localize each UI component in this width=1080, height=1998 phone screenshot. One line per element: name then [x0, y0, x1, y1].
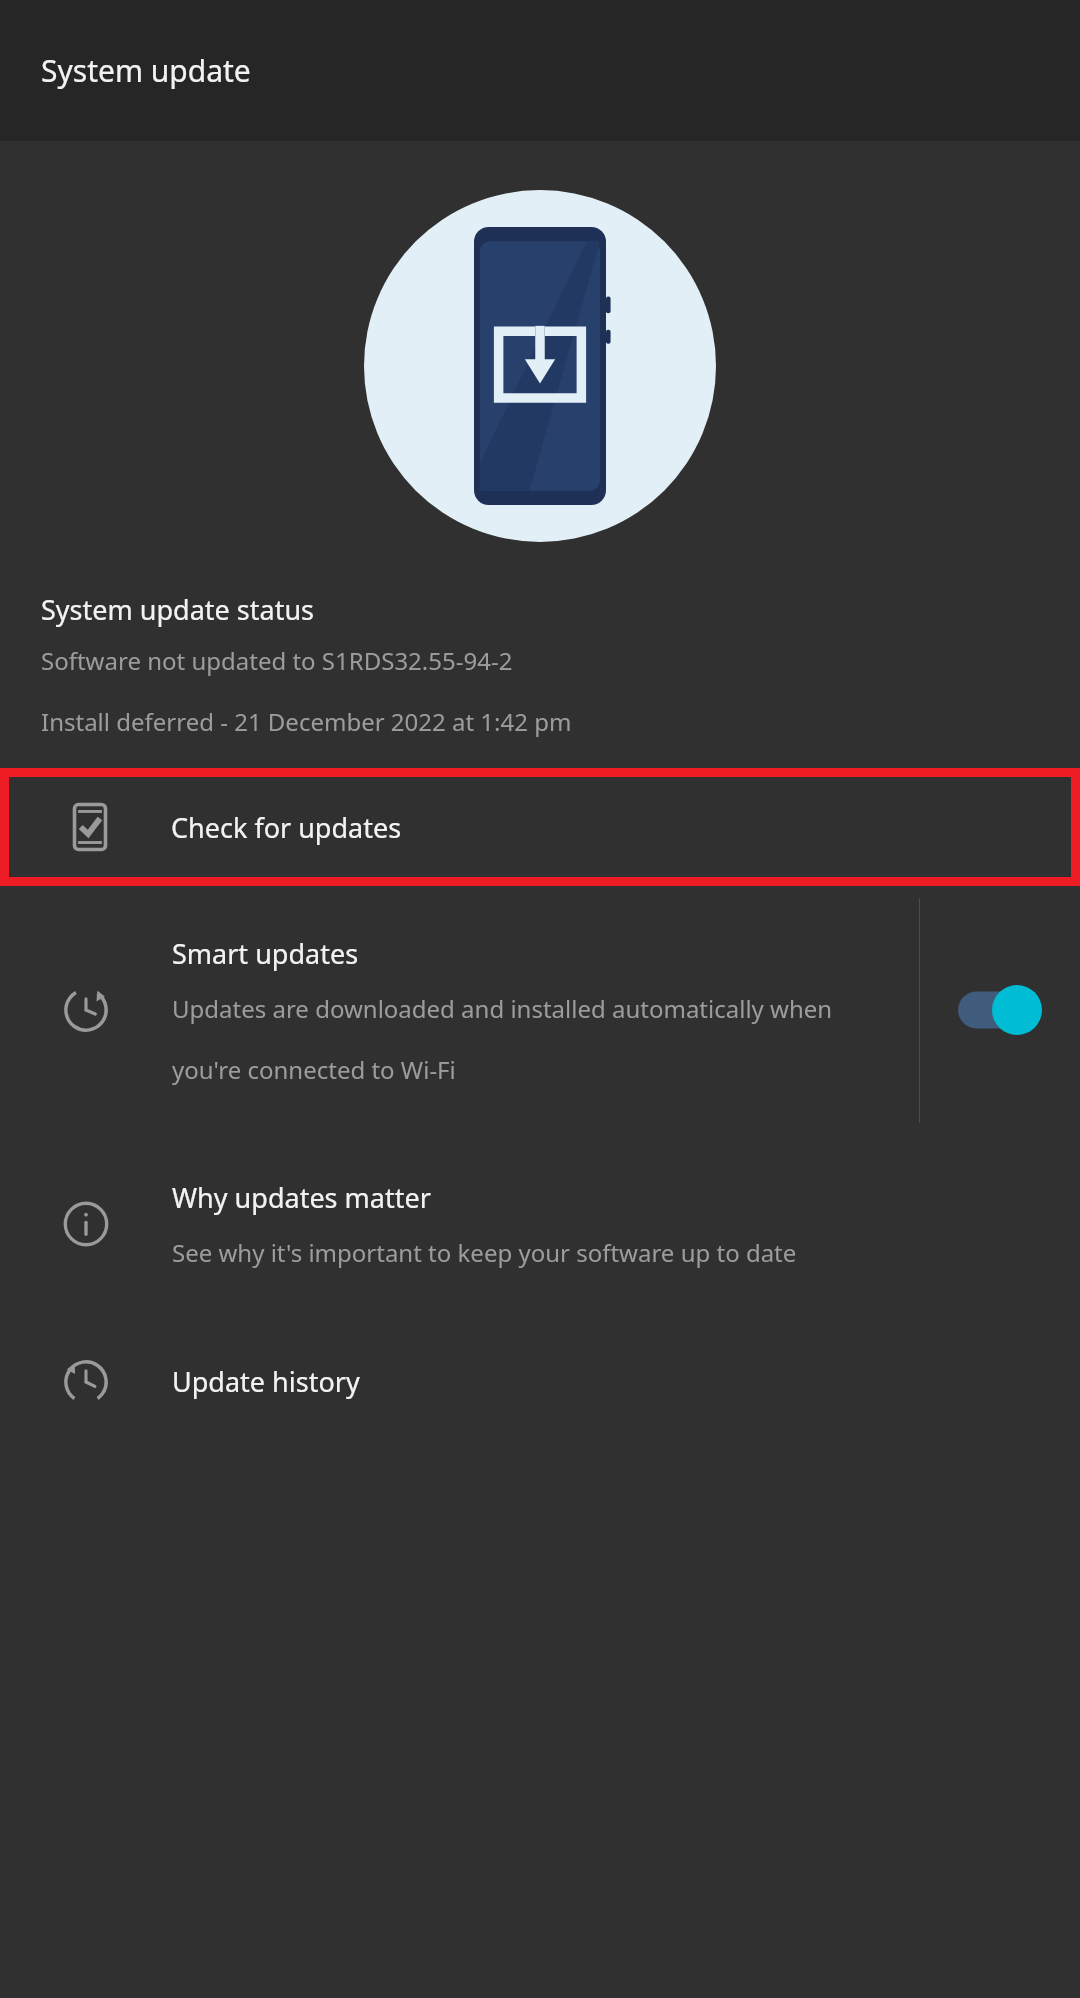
button[interactable]: Check for updates: [9, 777, 1071, 877]
button[interactable]: Why updates matter: [0, 1134, 1080, 1314]
staticText: Check for updates: [171, 809, 402, 846]
staticText: System update: [41, 50, 251, 91]
staticText: Why updates matter: [172, 1179, 431, 1216]
button[interactable]: Update history: [0, 1314, 1080, 1449]
staticText: Install deferred - 21 December 2022 at 1…: [41, 705, 572, 738]
staticText: System update status: [41, 591, 314, 628]
button[interactable]: Smart updates: [0, 886, 1080, 1134]
staticText: Smart updates: [172, 935, 359, 972]
staticText: See why it's important to keep your soft…: [172, 1236, 797, 1269]
button[interactable]: Smart updates toggle, on: [920, 886, 1080, 1134]
staticText: Update history: [172, 1363, 360, 1400]
staticText: Updates are downloaded and installed aut…: [172, 992, 905, 1086]
staticText: Software not updated to S1RDS32.55-94-2: [41, 644, 513, 677]
